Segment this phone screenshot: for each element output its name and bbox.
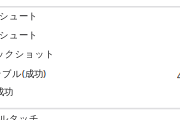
staticText: ンブル(成功)	[0, 67, 46, 80]
button[interactable]: ロシュート	[0, 10, 38, 22]
button[interactable]: 4	[177, 69, 180, 82]
staticText: ーシュート	[0, 29, 38, 41]
staticText: 4	[177, 69, 180, 82]
button[interactable]: ルタッチ	[0, 113, 39, 120]
button[interactable]: ンブル(成功)	[0, 67, 46, 80]
button[interactable]: ーシュート	[0, 29, 38, 41]
button[interactable]: 成功	[0, 86, 13, 98]
staticText: ロシュート	[0, 10, 38, 22]
button[interactable]: ロックショット	[0, 48, 55, 60]
staticText: 成功	[0, 86, 13, 98]
staticText: ロックショット	[0, 48, 55, 60]
staticText: ルタッチ	[0, 113, 39, 120]
